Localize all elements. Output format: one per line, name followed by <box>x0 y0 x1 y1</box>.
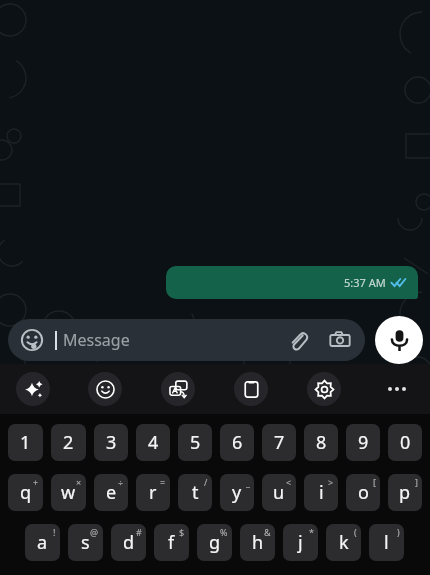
staticText: ) <box>397 526 400 538</box>
button[interactable]: Record voice message <box>375 316 423 364</box>
button[interactable]: r <box>136 474 170 511</box>
button[interactable]: w <box>51 474 86 511</box>
staticText: < <box>286 476 292 488</box>
staticText: o <box>358 480 369 505</box>
staticText: f <box>168 530 175 555</box>
staticText: j <box>298 530 303 555</box>
staticText: = <box>160 476 166 488</box>
staticText: × <box>76 476 82 488</box>
button[interactable]: i <box>304 474 338 511</box>
staticText: & <box>264 526 271 538</box>
staticText: ÷ <box>118 476 124 488</box>
staticText: 1 <box>20 430 31 455</box>
button[interactable]: 9 <box>346 424 380 461</box>
staticText: [ <box>373 476 376 488</box>
staticText: % <box>220 526 228 538</box>
staticText: _ <box>246 476 250 488</box>
button[interactable]: 1 <box>8 424 43 461</box>
button[interactable]: 4 <box>136 424 170 461</box>
button[interactable]: Translate <box>161 372 195 406</box>
button[interactable]: 3 <box>94 424 128 461</box>
staticText: > <box>328 476 334 488</box>
staticText: w <box>61 480 76 505</box>
button[interactable]: Camera <box>325 325 355 355</box>
button[interactable]: Emoji <box>88 372 122 406</box>
button[interactable]: Clipboard <box>234 372 268 406</box>
staticText: $ <box>179 526 185 538</box>
staticText: ( <box>354 526 357 538</box>
staticText: l <box>384 530 389 555</box>
button[interactable]: 7 <box>262 424 296 461</box>
staticText: 6 <box>232 430 243 455</box>
button[interactable]: t <box>178 474 212 511</box>
staticText: ! <box>53 526 56 538</box>
staticText: s <box>81 530 90 555</box>
button[interactable]: More options <box>380 372 414 406</box>
button[interactable]: g <box>197 524 232 561</box>
staticText: / <box>204 476 208 488</box>
button[interactable]: Settings <box>307 372 341 406</box>
button[interactable]: 5:37 AM <box>166 266 418 299</box>
staticText: 5 <box>190 430 201 455</box>
button[interactable]: 0 <box>388 424 422 461</box>
staticText: a <box>37 530 48 555</box>
staticText: @ <box>90 526 99 538</box>
staticText: 2 <box>63 430 74 455</box>
staticText: i <box>319 480 324 505</box>
staticText: Message <box>63 329 283 351</box>
button[interactable]: f <box>154 524 189 561</box>
staticText: g <box>209 530 221 555</box>
staticText: h <box>252 530 264 555</box>
staticText: q <box>20 480 32 505</box>
staticText: + <box>33 476 39 488</box>
button[interactable]: u <box>262 474 296 511</box>
button[interactable]: q <box>8 474 43 511</box>
staticText: 9 <box>358 430 369 455</box>
button[interactable]: y <box>220 474 254 511</box>
staticText: k <box>339 530 349 555</box>
staticText: 5:37 AM <box>344 275 386 290</box>
staticText: d <box>123 530 135 555</box>
staticText: * <box>309 526 314 538</box>
staticText: u <box>273 480 285 505</box>
button[interactable]: a <box>25 524 60 561</box>
staticText: 7 <box>274 430 285 455</box>
button[interactable]: Attach <box>283 325 313 355</box>
staticText: p <box>399 480 411 505</box>
button[interactable]: j <box>283 524 318 561</box>
button[interactable]: 5 <box>178 424 212 461</box>
button[interactable]: h <box>240 524 275 561</box>
button[interactable]: 2 <box>51 424 86 461</box>
button[interactable]: 8 <box>304 424 338 461</box>
staticText: r <box>149 480 157 505</box>
button[interactable]: k <box>326 524 361 561</box>
staticText: ] <box>415 476 418 488</box>
staticText: y <box>232 480 242 505</box>
button[interactable]: Magic compose <box>16 372 50 406</box>
staticText: 8 <box>316 430 327 455</box>
staticText: 3 <box>106 430 117 455</box>
staticText: 0 <box>400 430 411 455</box>
button[interactable]: o <box>346 474 380 511</box>
staticText: 4 <box>148 430 159 455</box>
button[interactable]: s <box>68 524 103 561</box>
button[interactable]: Stickers and emoji <box>8 319 365 361</box>
button[interactable]: 6 <box>220 424 254 461</box>
button[interactable]: l <box>369 524 404 561</box>
button[interactable]: Stickers and emoji <box>19 327 45 353</box>
staticText: t <box>192 480 199 505</box>
staticText: e <box>106 480 117 505</box>
button[interactable]: p <box>388 474 422 511</box>
button[interactable]: d <box>111 524 146 561</box>
button[interactable]: e <box>94 474 128 511</box>
staticText: # <box>136 526 142 538</box>
